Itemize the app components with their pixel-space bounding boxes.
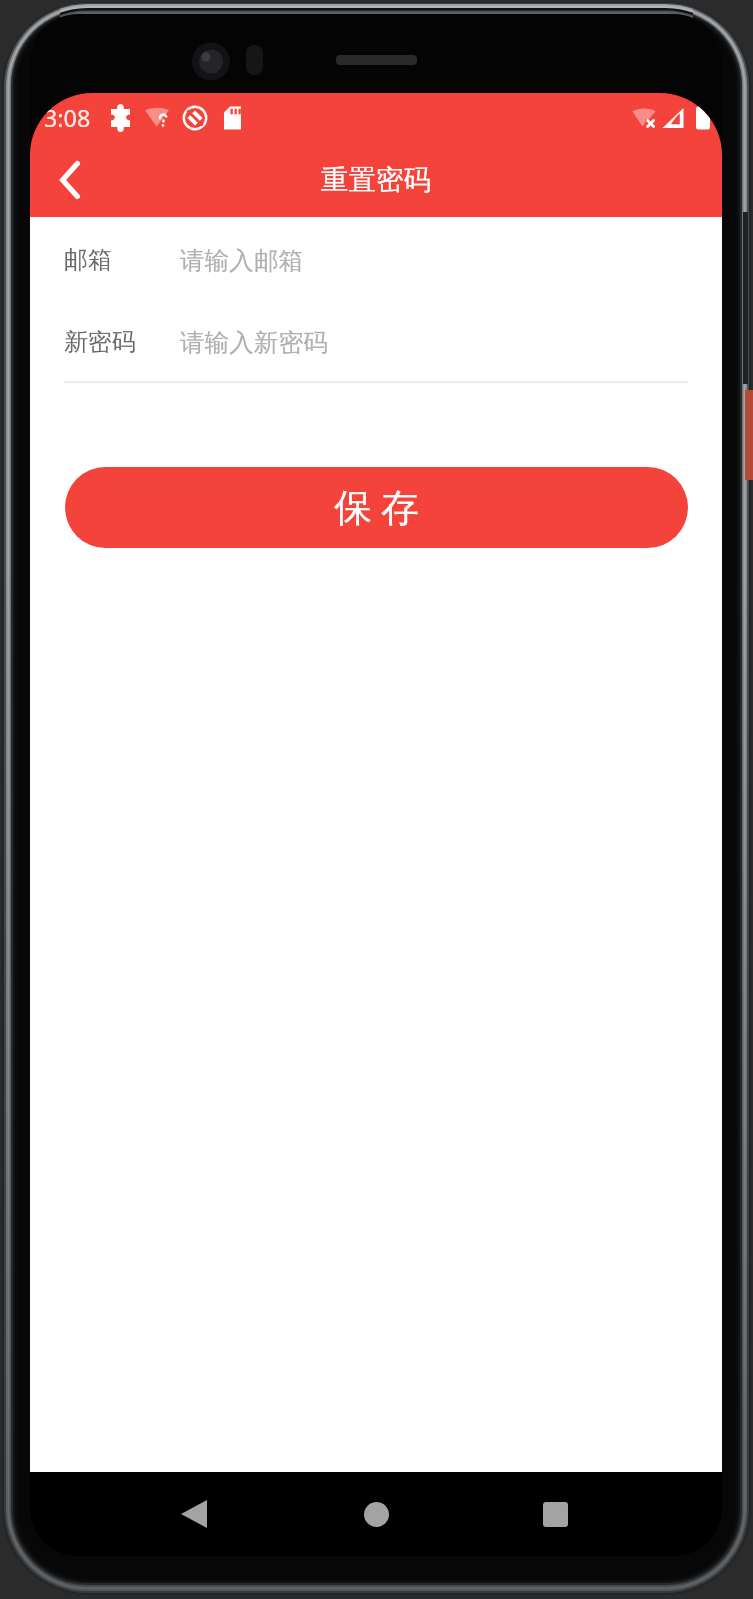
staticText: 3:08 (44, 102, 91, 134)
button[interactable]: Back (42, 152, 98, 208)
staticText: 重置密码 (321, 163, 431, 198)
staticText: 请输入新密码 (180, 327, 328, 358)
button[interactable]: Recents (525, 1484, 585, 1544)
staticText: 存 (381, 484, 419, 532)
staticText: 保 (334, 484, 372, 532)
button[interactable]: 保 (65, 467, 688, 548)
staticText: 邮箱 (64, 245, 112, 275)
staticText: 请输入邮箱 (180, 245, 303, 276)
staticText: 新密码 (64, 327, 136, 357)
button[interactable]: Home (346, 1484, 406, 1544)
button[interactable]: 新密码 (30, 299, 722, 381)
button[interactable]: 邮箱 (30, 217, 722, 299)
button[interactable]: Back (164, 1484, 224, 1544)
